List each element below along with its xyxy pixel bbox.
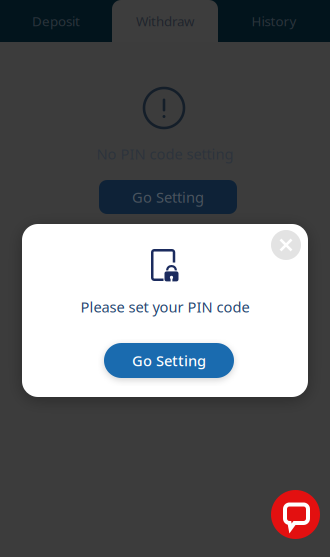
button[interactable]: Withdraw <box>112 0 218 42</box>
staticText: Withdraw <box>136 12 194 30</box>
staticText: No PIN code setting <box>96 144 233 163</box>
button[interactable]: Deposit <box>0 0 112 42</box>
staticText: History <box>251 12 296 30</box>
button[interactable]: Go Setting <box>104 343 234 378</box>
staticText: Go Setting <box>132 187 204 207</box>
staticText: Go Setting <box>132 351 206 370</box>
button[interactable]: Go Setting <box>99 180 237 214</box>
button[interactable]: History <box>218 0 330 42</box>
staticText: Deposit <box>32 12 80 30</box>
staticText: Please set your PIN code <box>80 297 249 316</box>
button[interactable]: Chat support <box>271 490 320 539</box>
button[interactable]: Close <box>271 230 301 260</box>
